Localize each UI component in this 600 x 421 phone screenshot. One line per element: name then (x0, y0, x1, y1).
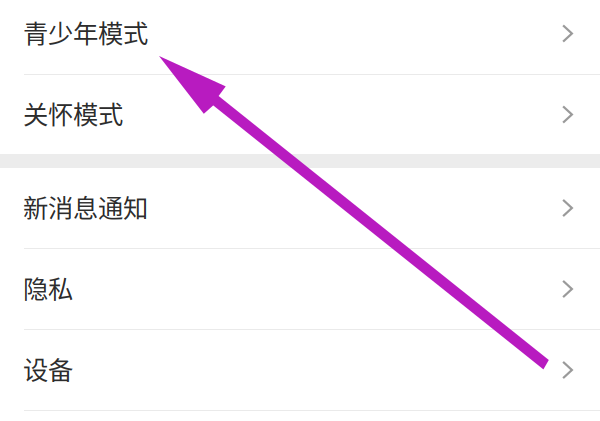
button[interactable]: 设备 (0, 330, 600, 410)
button[interactable]: 隐私 (0, 249, 600, 329)
button[interactable]: 关怀模式 (0, 75, 600, 154)
staticText: 关怀模式 (23, 95, 123, 131)
staticText: 新消息通知 (23, 188, 148, 225)
staticText: 设备 (23, 350, 73, 387)
staticText: 隐私 (23, 269, 73, 306)
staticText: 青少年模式 (23, 14, 148, 50)
button[interactable]: 新消息通知 (0, 168, 600, 248)
button[interactable]: 青少年模式 (0, 0, 600, 74)
